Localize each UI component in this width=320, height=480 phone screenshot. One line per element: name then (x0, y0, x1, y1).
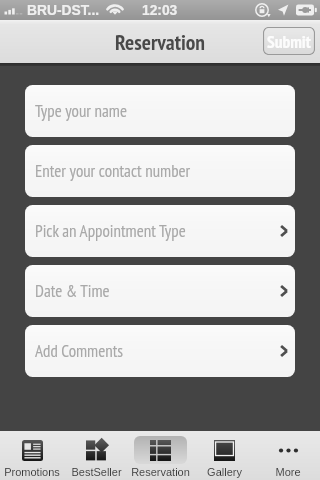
button[interactable]: Pick an Appointment Type (25, 205, 295, 257)
other: Open Add Comments (278, 343, 290, 359)
staticText: Reservation (115, 28, 205, 56)
staticText: Add Comments (35, 340, 124, 362)
staticText: 12:03 (142, 3, 178, 18)
staticText: Gallery (207, 466, 242, 478)
button[interactable]: Promotions (0, 431, 64, 480)
button[interactable]: Gallery (192, 431, 256, 480)
other: Open Pick an Appointment Type (278, 223, 290, 239)
button[interactable]: Enter your contact number (25, 145, 295, 197)
staticText: More (275, 466, 301, 478)
button[interactable]: Type your name (25, 85, 295, 137)
button[interactable]: BestSeller (64, 431, 128, 480)
staticText: Date & Time (35, 280, 110, 302)
button[interactable]: Submit (263, 27, 315, 55)
button[interactable]: Reservation (128, 431, 192, 480)
button[interactable]: Add Comments (25, 325, 295, 377)
staticText: Enter your contact number (35, 160, 191, 182)
button[interactable]: Date & Time (25, 265, 295, 317)
staticText: Pick an Appointment Type (35, 220, 186, 242)
staticText: Promotions (4, 466, 60, 478)
staticText: BestSeller (71, 466, 122, 478)
other: Open Date & Time (278, 283, 290, 299)
staticText: Type your name (35, 100, 127, 122)
staticText: Reservation (131, 466, 190, 478)
button[interactable]: More (256, 431, 320, 480)
staticText: Submit (267, 30, 311, 53)
staticText: BRU-DST... (27, 3, 100, 18)
